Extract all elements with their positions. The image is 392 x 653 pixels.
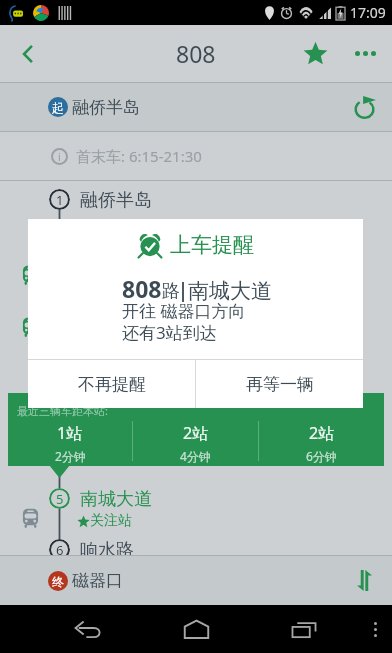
staticText: 路	[162, 280, 180, 303]
staticText: 南城大道	[80, 488, 152, 510]
staticText: 融侨半岛	[72, 97, 140, 118]
button[interactable]: Back	[57, 605, 119, 653]
staticText: 808	[176, 38, 216, 69]
staticText: 1站	[57, 422, 83, 444]
button[interactable]: i	[0, 132, 392, 180]
button[interactable]: Reverse direction	[336, 556, 392, 605]
staticText: 关注站	[90, 512, 132, 530]
staticText: 17:09	[350, 3, 386, 22]
button[interactable]: 1站	[8, 422, 132, 464]
button[interactable]: 起	[0, 83, 392, 131]
staticText: 2分钟	[55, 448, 86, 464]
button[interactable]: Refresh	[336, 83, 392, 131]
staticText: 4分钟	[180, 448, 211, 464]
button[interactable]: 2站	[259, 422, 384, 464]
button[interactable]: Home	[165, 605, 227, 653]
button[interactable]: Back	[0, 26, 56, 82]
staticText: 融侨半岛	[80, 189, 152, 211]
staticText: 5	[56, 490, 64, 508]
button[interactable]: 终	[0, 556, 392, 605]
staticText: 响水路	[80, 539, 134, 555]
staticText: 再等一辆	[246, 374, 314, 395]
button[interactable]: 4	[0, 339, 392, 361]
staticText: 2站	[309, 422, 335, 444]
staticText: 磁器口	[72, 570, 123, 591]
button[interactable]: Recents	[273, 605, 335, 653]
button[interactable]: 2站	[133, 422, 258, 464]
staticText: 808	[122, 273, 162, 304]
staticText: 1	[56, 191, 64, 209]
button[interactable]: 再等一辆	[196, 360, 363, 408]
button[interactable]: 3	[0, 289, 392, 311]
button[interactable]: Menu	[374, 622, 377, 637]
staticText: 6	[56, 541, 64, 555]
staticText: i	[58, 149, 61, 164]
staticText: 上车提醒	[170, 232, 254, 258]
button[interactable]: 不再提醒	[28, 360, 195, 408]
button[interactable]: 1	[0, 189, 392, 211]
button[interactable]: Favorite	[291, 25, 339, 82]
button[interactable]: 5	[0, 488, 392, 510]
staticText: 终	[52, 574, 64, 589]
staticText: 6分钟	[306, 448, 337, 464]
staticText: 最近三辆车距本站:	[17, 403, 108, 418]
staticText: 南城大道	[188, 278, 272, 304]
button[interactable]: 2	[0, 239, 392, 261]
staticText: 2站	[183, 422, 209, 444]
staticText: 首末车: 6:15-21:30	[76, 146, 202, 166]
staticText: 起	[52, 100, 64, 115]
button[interactable]: More options	[342, 25, 392, 82]
staticText: 开往 磁器口方向	[122, 299, 246, 322]
staticText: 还有3站到达	[122, 321, 217, 344]
button[interactable]: 6	[0, 539, 392, 555]
staticText: 不再提醒	[78, 374, 146, 395]
